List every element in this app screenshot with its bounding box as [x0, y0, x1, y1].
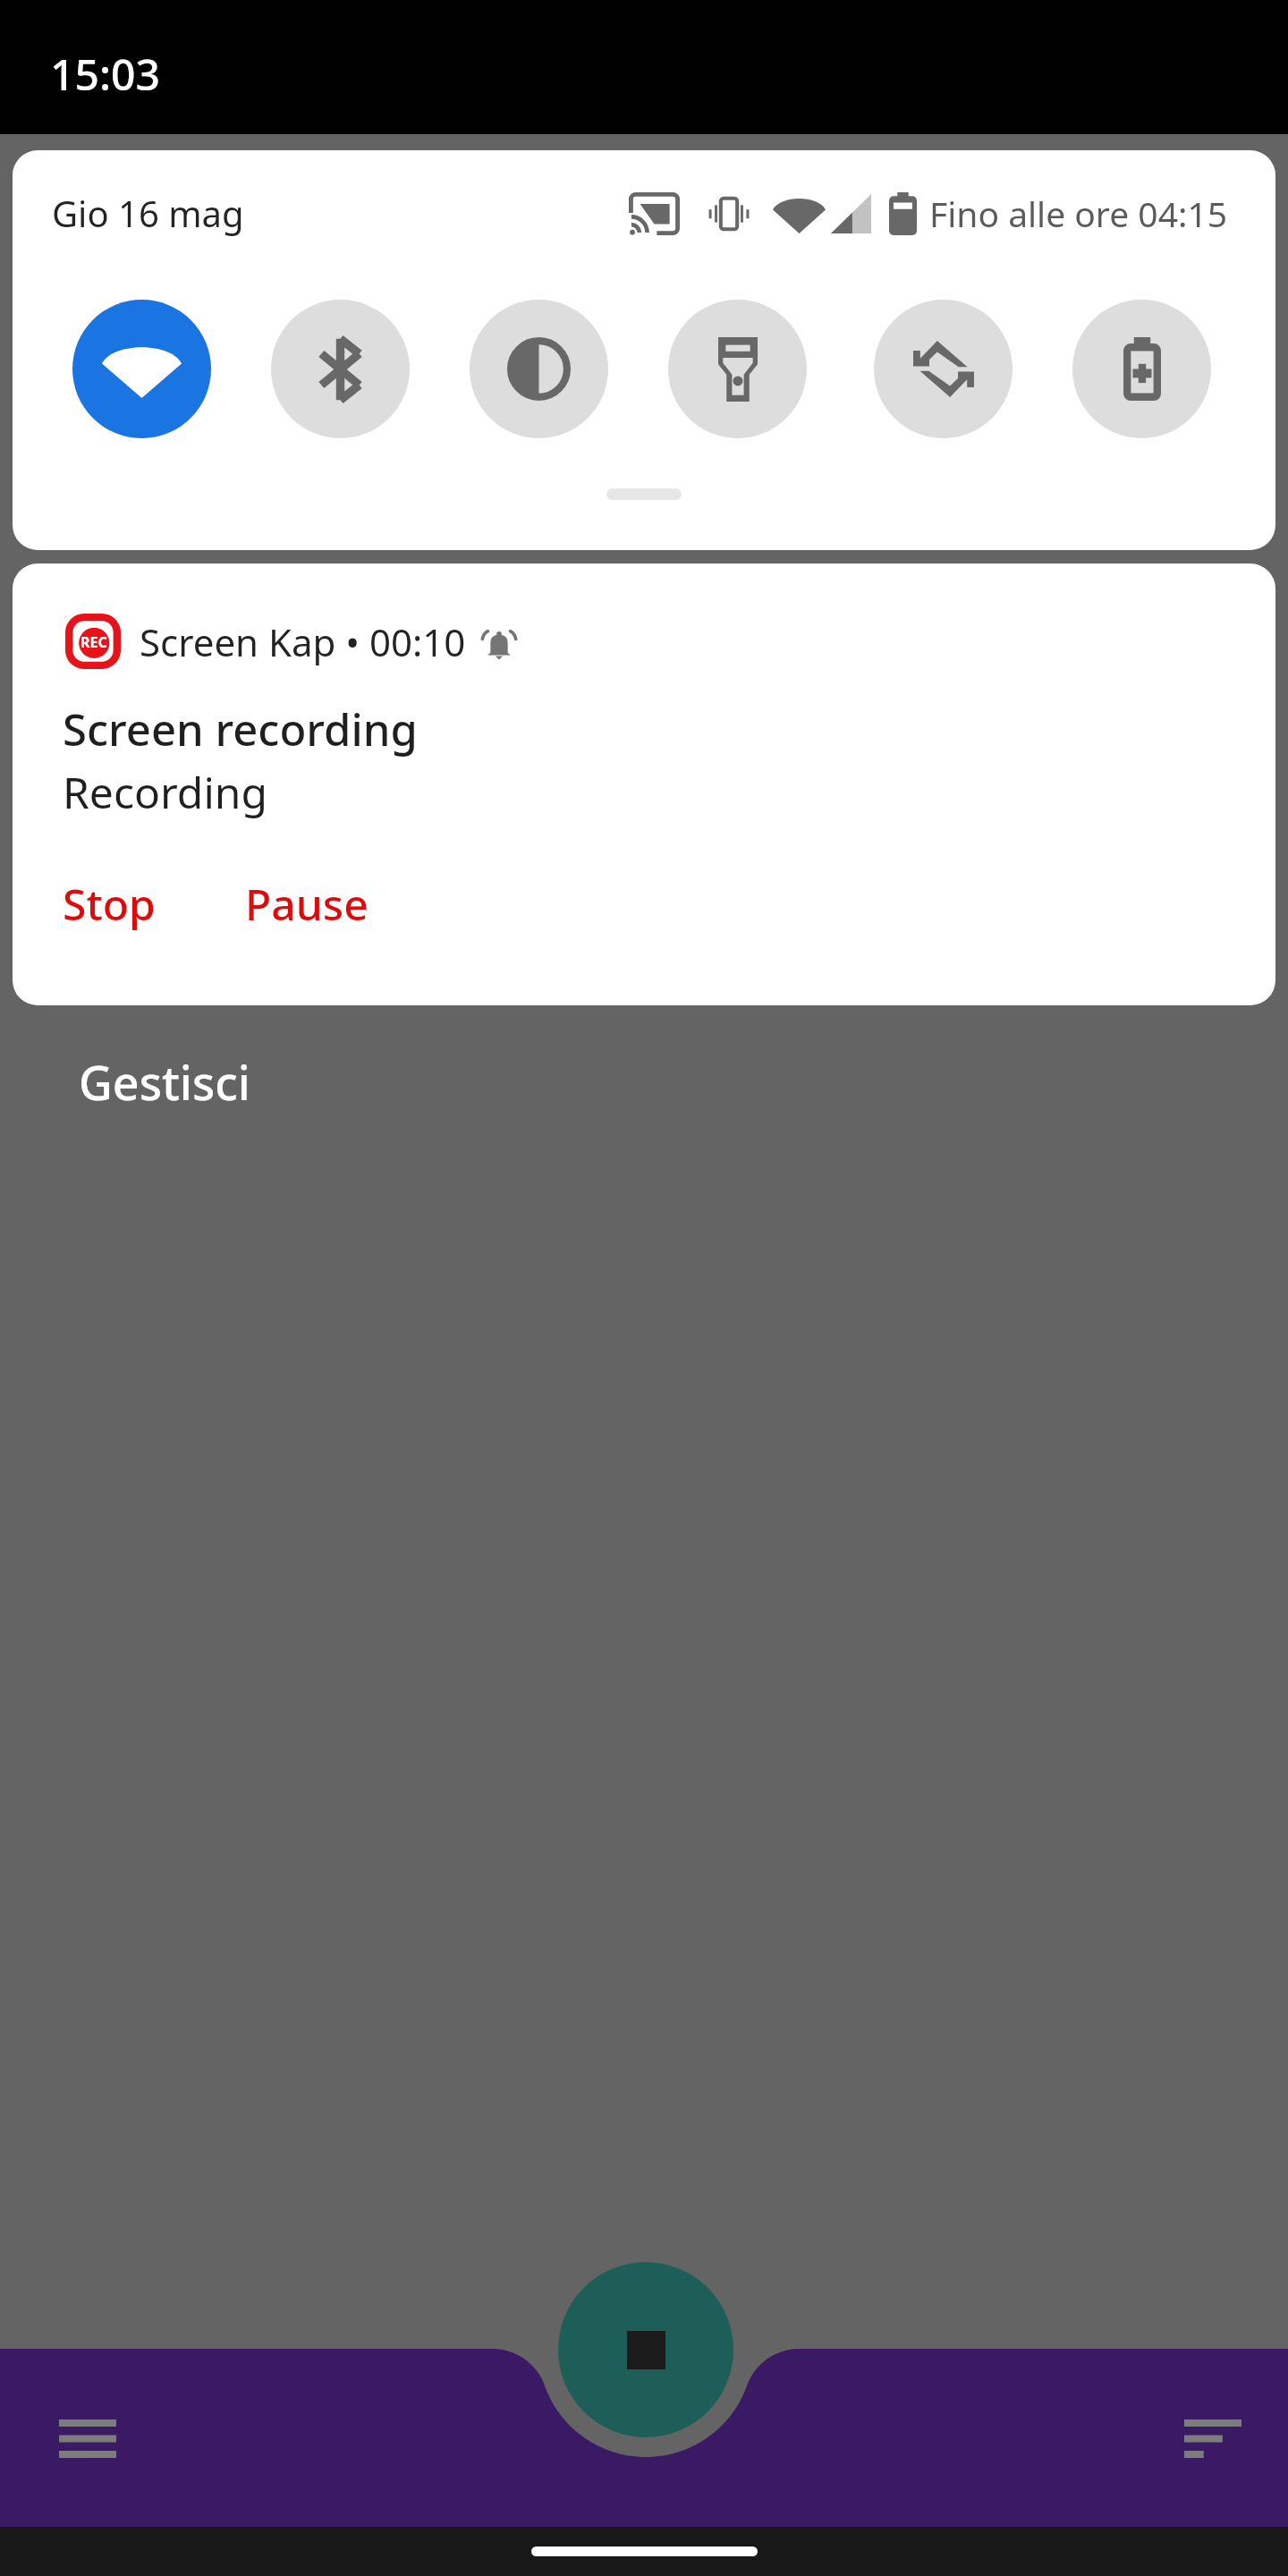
staticText: Recording — [63, 763, 267, 821]
button[interactable]: Auto-rotate — [874, 300, 1013, 438]
button[interactable]: Dark theme — [470, 300, 608, 438]
button[interactable]: Sort — [1156, 2383, 1270, 2494]
staticText: Stop — [63, 875, 156, 933]
staticText: Gestisci — [79, 1050, 250, 1114]
staticText: Screen Kap • 00:10 — [140, 616, 466, 667]
button[interactable]: REC — [13, 563, 1275, 1005]
button[interactable]: Pause — [229, 866, 385, 942]
staticText: Gio 16 mag — [52, 189, 244, 237]
button[interactable]: Battery saver — [1072, 300, 1211, 438]
button[interactable]: Flashlight — [668, 300, 807, 438]
staticText: Pause — [245, 875, 369, 933]
button[interactable]: Stop recording — [558, 2262, 733, 2437]
button[interactable]: Stop — [47, 866, 172, 942]
staticText: REC — [80, 632, 107, 652]
button[interactable]: Wi-Fi — [72, 300, 211, 438]
staticText: Fino alle ore 04:15 — [929, 190, 1228, 237]
button[interactable]: Menu — [30, 2383, 145, 2494]
staticText: Screen recording — [63, 699, 418, 759]
button[interactable]: Bluetooth — [271, 300, 410, 438]
staticText: 15:03 — [50, 45, 160, 103]
button[interactable]: Gestisci — [57, 1036, 272, 1128]
